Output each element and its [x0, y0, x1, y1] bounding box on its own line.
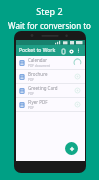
button[interactable]: Devices [59, 47, 67, 55]
staticText: Calendar [28, 57, 47, 63]
staticText: Wait for conversion to complete [0, 20, 99, 42]
button[interactable]: Greeting Card [16, 84, 85, 97]
button[interactable]: Add [65, 142, 78, 155]
staticText: Flyer PDF [28, 99, 48, 105]
staticText: Pocket to Work [19, 47, 59, 54]
button[interactable]: Brochure [16, 70, 85, 83]
staticText: Step 2 [36, 5, 63, 17]
button[interactable]: Flyer PDF [16, 98, 85, 111]
staticText: PDF document [28, 64, 51, 68]
button[interactable]: Settings [67, 47, 75, 55]
staticText: Greeting Card [28, 85, 58, 91]
button[interactable]: More options [75, 47, 82, 54]
staticText: PDF [28, 78, 34, 82]
staticText: Brochure [28, 71, 48, 77]
staticText: PDF [28, 92, 34, 96]
staticText: PDF [28, 106, 34, 110]
button[interactable]: Calendar [16, 56, 85, 69]
